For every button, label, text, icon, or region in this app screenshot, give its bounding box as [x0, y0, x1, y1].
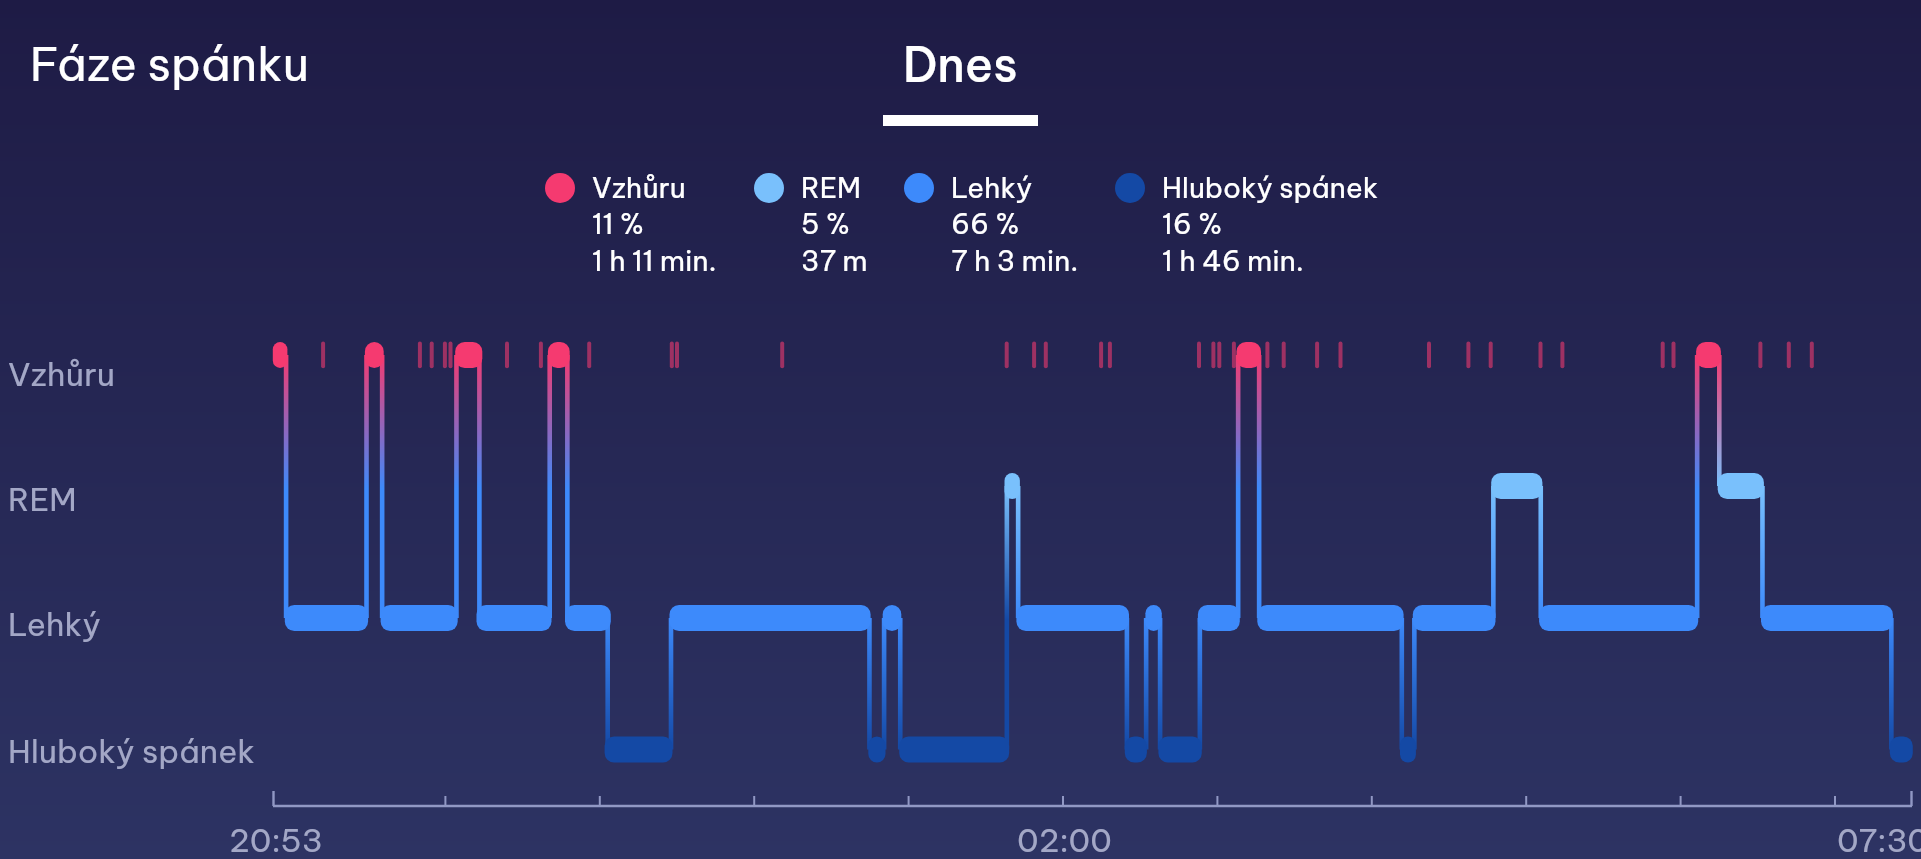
staticText: 7 h 3 min. [951, 243, 1079, 278]
staticText: 11 % [592, 206, 644, 241]
staticText: 37 m [801, 243, 868, 278]
staticText: Dnes [903, 35, 1018, 94]
button[interactable]: Vzhůru [545, 165, 795, 280]
staticText: Hluboký spánek [8, 731, 256, 771]
button[interactable]: Hluboký spánek [1115, 165, 1365, 280]
staticText: 02:00 [1017, 820, 1112, 859]
staticText: Vzhůru [8, 354, 115, 394]
staticText: 16 % [1162, 206, 1223, 241]
staticText: Fáze spánku [30, 35, 309, 93]
staticText: Lehký [8, 604, 101, 644]
staticText: 1 h 11 min. [592, 243, 717, 278]
staticText: Hluboký spánek [1162, 170, 1379, 205]
staticText: 66 % [951, 206, 1020, 241]
button[interactable]: REM [754, 165, 1004, 280]
staticText: Vzhůru [592, 170, 686, 205]
staticText: REM [8, 479, 77, 519]
staticText: 5 % [801, 206, 850, 241]
staticText: 1 h 46 min. [1162, 243, 1304, 278]
staticText: 07:30 [1837, 820, 1921, 859]
button[interactable]: Dnes [883, 30, 1038, 126]
button[interactable]: Lehký [904, 165, 1154, 280]
staticText: 20:53 [229, 820, 323, 859]
staticText: Lehký [951, 170, 1033, 205]
staticText: REM [801, 170, 861, 205]
